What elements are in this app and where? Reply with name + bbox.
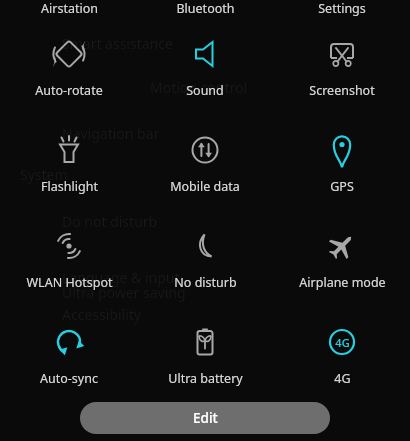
staticText: Navigation bar bbox=[62, 124, 160, 143]
button[interactable]: Ultra battery bbox=[137, 318, 273, 387]
staticText: GPS bbox=[330, 178, 354, 195]
button[interactable]: 4G bbox=[274, 318, 410, 387]
staticText: Bluetooth bbox=[176, 0, 235, 16]
button[interactable]: Airplane mode bbox=[274, 222, 410, 291]
staticText: Airplane mode bbox=[299, 274, 386, 291]
staticText: Auto-rotate bbox=[35, 82, 103, 99]
button[interactable]: WLAN Hotspot bbox=[1, 222, 137, 291]
staticText: Edit bbox=[193, 409, 218, 427]
button[interactable]: Auto-sync bbox=[1, 318, 137, 387]
staticText: System bbox=[20, 165, 68, 184]
button[interactable]: No disturb bbox=[137, 222, 273, 291]
button[interactable]: Sound bbox=[137, 30, 273, 99]
button[interactable]: Airstation bbox=[1, 0, 137, 16]
staticText: Sound bbox=[186, 82, 224, 99]
staticText: Airstation bbox=[41, 0, 98, 16]
staticText: 4G bbox=[335, 335, 350, 350]
staticText: Screenshot bbox=[309, 82, 375, 99]
button[interactable]: GPS bbox=[274, 126, 410, 195]
staticText: WLAN Hotspot bbox=[26, 274, 113, 291]
button[interactable]: Screenshot bbox=[274, 30, 410, 99]
staticText: Settings bbox=[318, 0, 366, 16]
staticText: Accessibility bbox=[62, 305, 141, 324]
button[interactable]: Flashlight bbox=[1, 126, 137, 195]
button[interactable]: Settings bbox=[274, 0, 410, 16]
button[interactable]: Auto-rotate bbox=[1, 30, 137, 99]
button[interactable]: Mobile data bbox=[137, 126, 273, 195]
button[interactable]: Bluetooth bbox=[137, 0, 273, 16]
staticText: Ultra power saving bbox=[62, 283, 186, 302]
staticText: Flashlight bbox=[41, 178, 98, 195]
staticText: 4G bbox=[334, 370, 351, 387]
staticText: Motion control bbox=[150, 78, 248, 97]
staticText: Do not disturb bbox=[62, 212, 158, 231]
staticText: Language & input bbox=[62, 268, 180, 287]
staticText: Auto-sync bbox=[40, 370, 98, 387]
staticText: Smart assistance bbox=[62, 34, 173, 53]
button[interactable]: Edit bbox=[80, 402, 330, 434]
staticText: Ultra battery bbox=[168, 370, 243, 387]
staticText: Mobile data bbox=[170, 178, 240, 195]
staticText: No disturb bbox=[174, 274, 237, 291]
